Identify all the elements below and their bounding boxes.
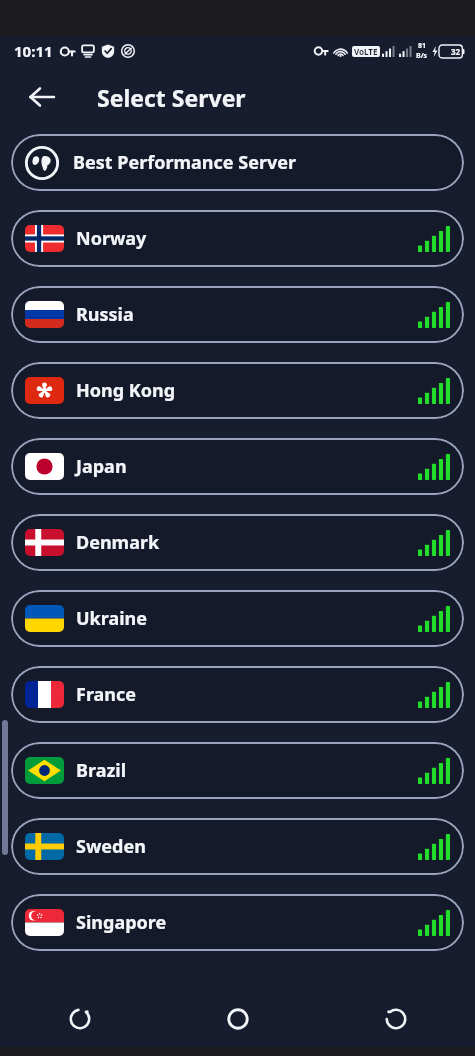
staticText: 32 [451, 46, 461, 57]
button[interactable]: Japan [11, 438, 464, 495]
button[interactable]: Home [159, 991, 317, 1047]
staticText: France [76, 682, 137, 707]
staticText: 81 [418, 41, 427, 51]
staticText: Best Performance Server [73, 150, 297, 175]
staticText: Hong Kong [76, 378, 176, 403]
staticText: Russia [76, 302, 134, 327]
staticText: B/s [416, 51, 428, 61]
button[interactable]: France [11, 666, 464, 723]
staticText: 10:11 [14, 41, 53, 61]
staticText: VoLTE [354, 46, 378, 57]
button[interactable]: Hong Kong [11, 362, 464, 419]
staticText: Norway [76, 226, 147, 251]
button[interactable]: Brazil [11, 742, 464, 799]
staticText: Sweden [76, 834, 146, 859]
button[interactable]: Best Performance Server [11, 134, 464, 191]
staticText: Japan [76, 454, 127, 479]
staticText: Denmark [76, 530, 160, 555]
staticText: Ukraine [76, 606, 148, 631]
button[interactable]: Ukraine [11, 590, 464, 647]
button[interactable]: Back [20, 75, 64, 119]
button[interactable]: Russia [11, 286, 464, 343]
button[interactable]: Norway [11, 210, 464, 267]
staticText: Singapore [76, 910, 167, 935]
button[interactable]: Denmark [11, 514, 464, 571]
button[interactable]: Back [317, 991, 475, 1047]
staticText: Brazil [76, 758, 127, 783]
button[interactable]: Singapore [11, 894, 464, 951]
staticText: Select Server [97, 82, 246, 113]
button[interactable]: Sweden [11, 818, 464, 875]
button[interactable]: Recents [0, 991, 159, 1047]
